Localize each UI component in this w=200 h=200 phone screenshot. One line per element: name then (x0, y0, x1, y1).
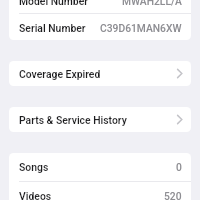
button[interactable]: Songs (9, 153, 191, 181)
button[interactable]: Parts & Service History (9, 107, 191, 132)
staticText: 520 (164, 190, 182, 200)
staticText: Model Number (19, 0, 89, 7)
staticText: Songs (19, 161, 49, 173)
button[interactable]: Coverage Expired (9, 61, 191, 86)
button[interactable]: Serial Number (9, 14, 191, 40)
button[interactable]: Model Number (9, 0, 191, 13)
staticText: Parts & Service History (19, 114, 127, 126)
staticText: Serial Number (19, 22, 86, 34)
staticText: 0 (176, 161, 182, 173)
staticText: C39D61MAN6XW (100, 22, 182, 34)
staticText: Videos (19, 190, 52, 200)
staticText: Coverage Expired (19, 68, 101, 80)
button[interactable]: Videos (9, 182, 191, 200)
staticText: MWAH2LL/A (122, 0, 182, 7)
